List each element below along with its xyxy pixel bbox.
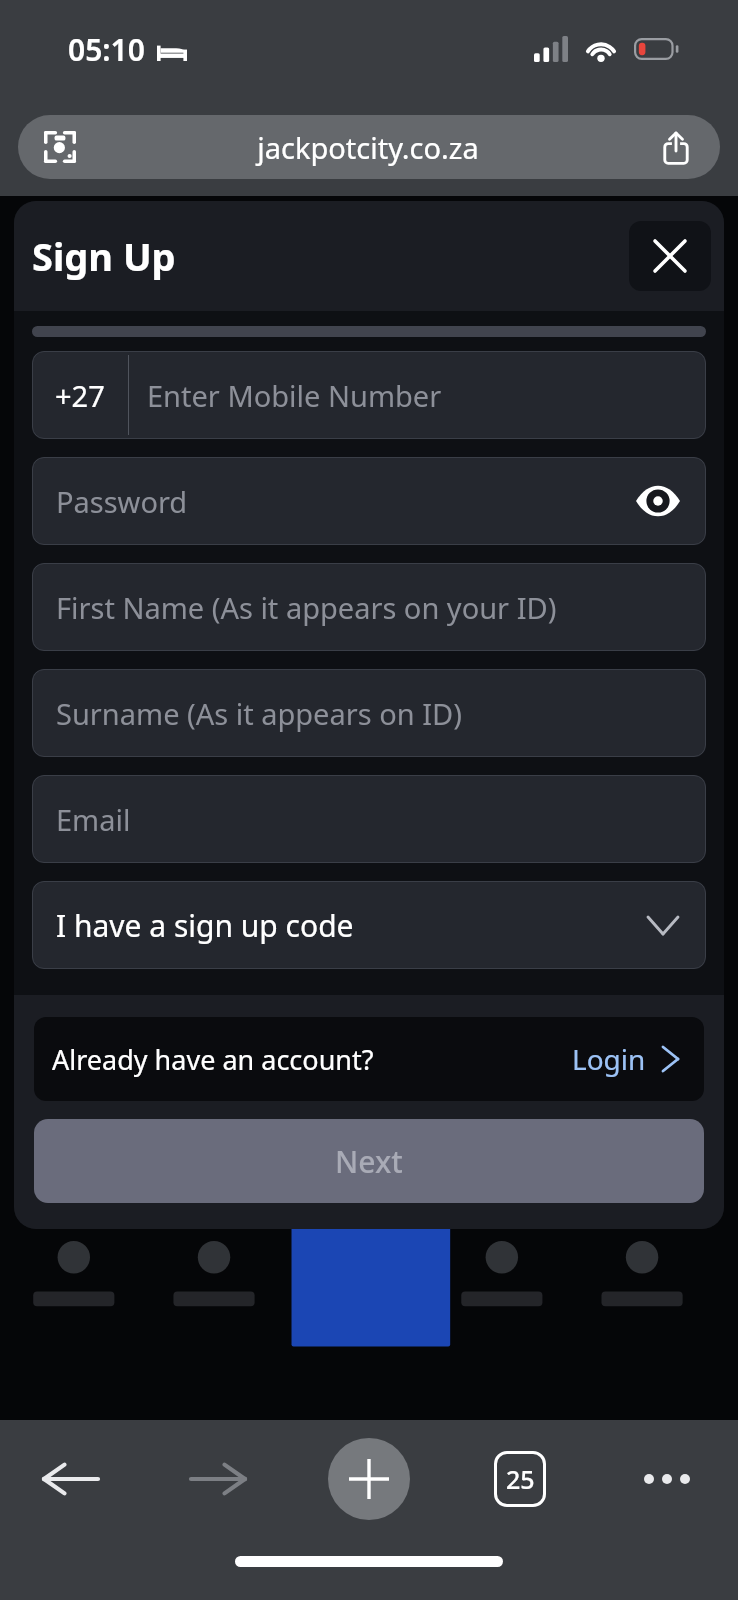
- button[interactable]: Forward: [181, 1442, 255, 1516]
- staticText: 05:10: [68, 29, 145, 70]
- button[interactable]: Tabs, 25 open: [483, 1442, 557, 1516]
- staticText: Login: [572, 1040, 646, 1078]
- button[interactable]: First Name (As it appears on your ID): [32, 563, 706, 651]
- button[interactable]: Show password: [630, 473, 686, 529]
- staticText: Next: [335, 1141, 403, 1182]
- staticText: Password: [56, 482, 630, 521]
- staticText: jackpotcity.co.za: [82, 128, 654, 167]
- staticText: Email: [56, 800, 131, 839]
- button[interactable]: Search with camera: [38, 125, 82, 169]
- staticText: First Name (As it appears on your ID): [56, 588, 557, 627]
- button[interactable]: Close: [629, 221, 711, 291]
- button[interactable]: Email: [32, 775, 706, 863]
- staticText: 25: [506, 1462, 535, 1496]
- staticText: I have a sign up code: [56, 905, 646, 946]
- button[interactable]: Surname (As it appears on ID): [32, 669, 706, 757]
- button[interactable]: Search with camera: [18, 115, 720, 179]
- button[interactable]: Back: [34, 1442, 108, 1516]
- button[interactable]: I have a sign up code: [32, 881, 706, 969]
- staticText: Surname (As it appears on ID): [56, 694, 462, 733]
- button[interactable]: More options: [630, 1442, 704, 1516]
- staticText: +27: [55, 376, 105, 415]
- staticText: Enter Mobile Number: [147, 376, 442, 415]
- button[interactable]: Already have an account?: [34, 1017, 704, 1101]
- button[interactable]: Share: [654, 125, 698, 169]
- button[interactable]: Next: [34, 1119, 704, 1203]
- button[interactable]: +27: [32, 351, 706, 439]
- button[interactable]: New tab: [328, 1438, 410, 1520]
- staticText: Already have an account?: [52, 1041, 572, 1078]
- staticText: Sign Up: [32, 230, 176, 282]
- button[interactable]: Password: [32, 457, 706, 545]
